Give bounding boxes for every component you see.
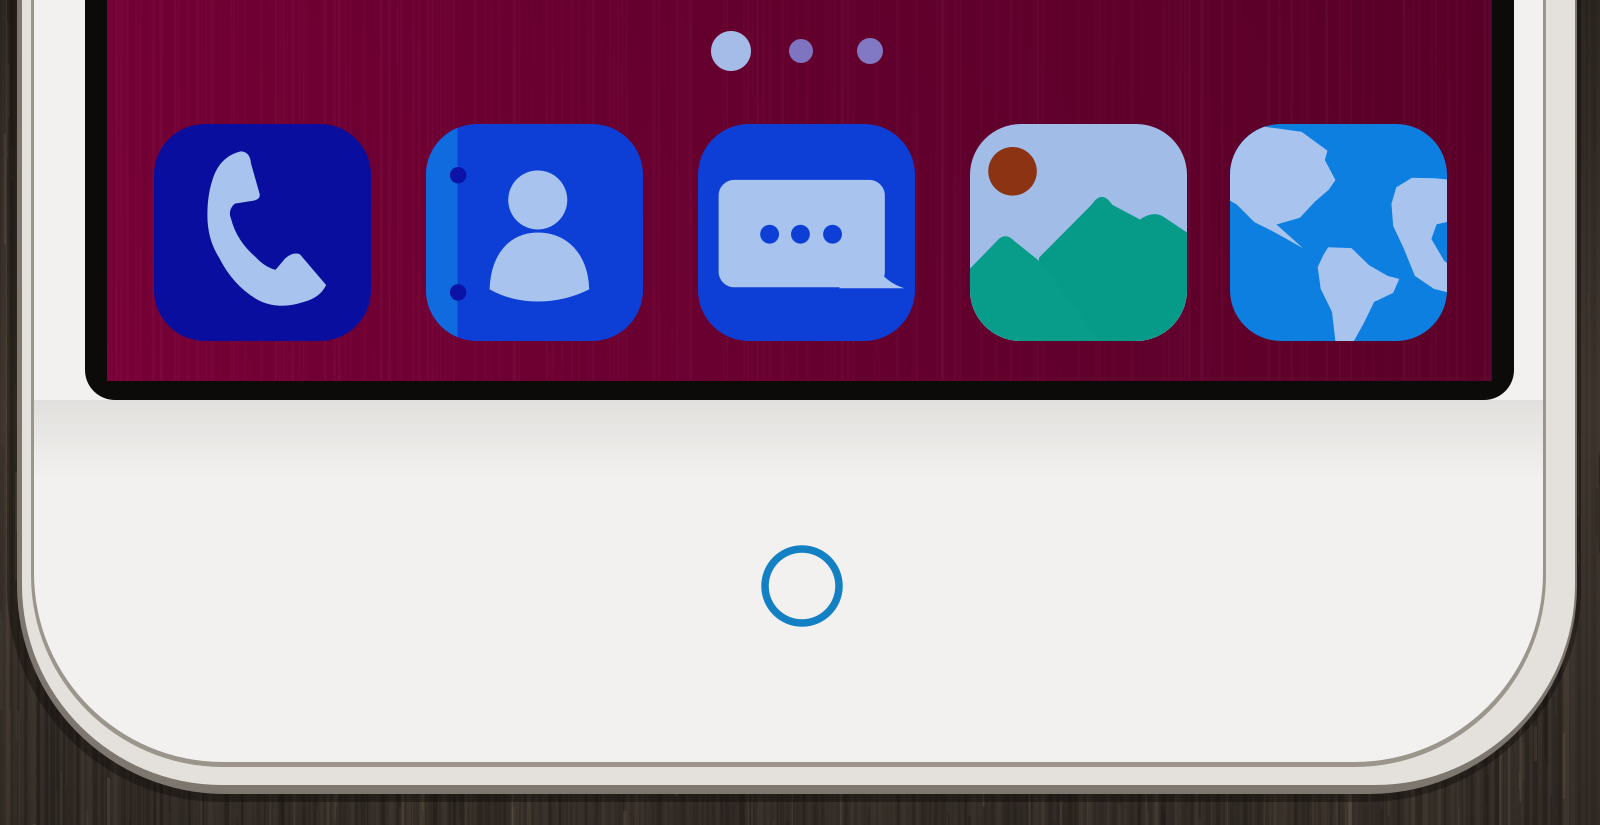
button[interactable]: Browser [1230, 124, 1447, 341]
button[interactable]: Photos [970, 124, 1187, 341]
button[interactable]: Contacts [426, 124, 643, 341]
button[interactable]: Phone [154, 124, 371, 341]
button[interactable]: Home [765, 549, 839, 623]
button[interactable]: Messages [698, 124, 915, 341]
